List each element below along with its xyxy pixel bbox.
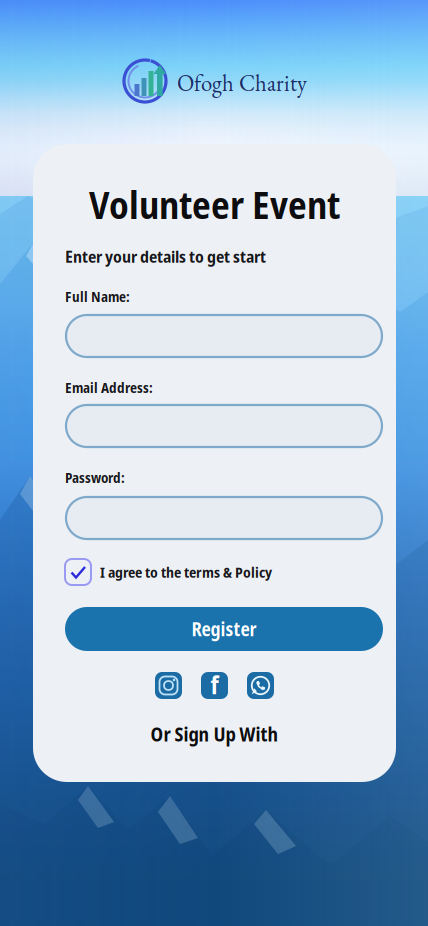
staticText: Or Sign Up With — [150, 721, 278, 747]
staticText: Email Address: — [65, 378, 153, 397]
staticText: Enter your details to get start — [65, 245, 266, 268]
staticText: I agree to the terms & Policy — [100, 562, 272, 582]
staticText: Full Name: — [65, 287, 130, 306]
staticText: Register — [191, 616, 256, 642]
staticText: Password: — [65, 468, 125, 487]
button[interactable]: Register — [65, 607, 383, 651]
staticText: f — [210, 667, 218, 702]
staticText: Volunteer Event — [89, 179, 340, 230]
staticText: Ofogh Charity — [177, 68, 307, 98]
button[interactable]: I agree to the terms & Policy — [65, 559, 383, 585]
button[interactable]: Instagram — [155, 672, 182, 699]
button[interactable]: Facebook — [201, 672, 228, 699]
button[interactable]: WhatsApp — [247, 672, 274, 699]
